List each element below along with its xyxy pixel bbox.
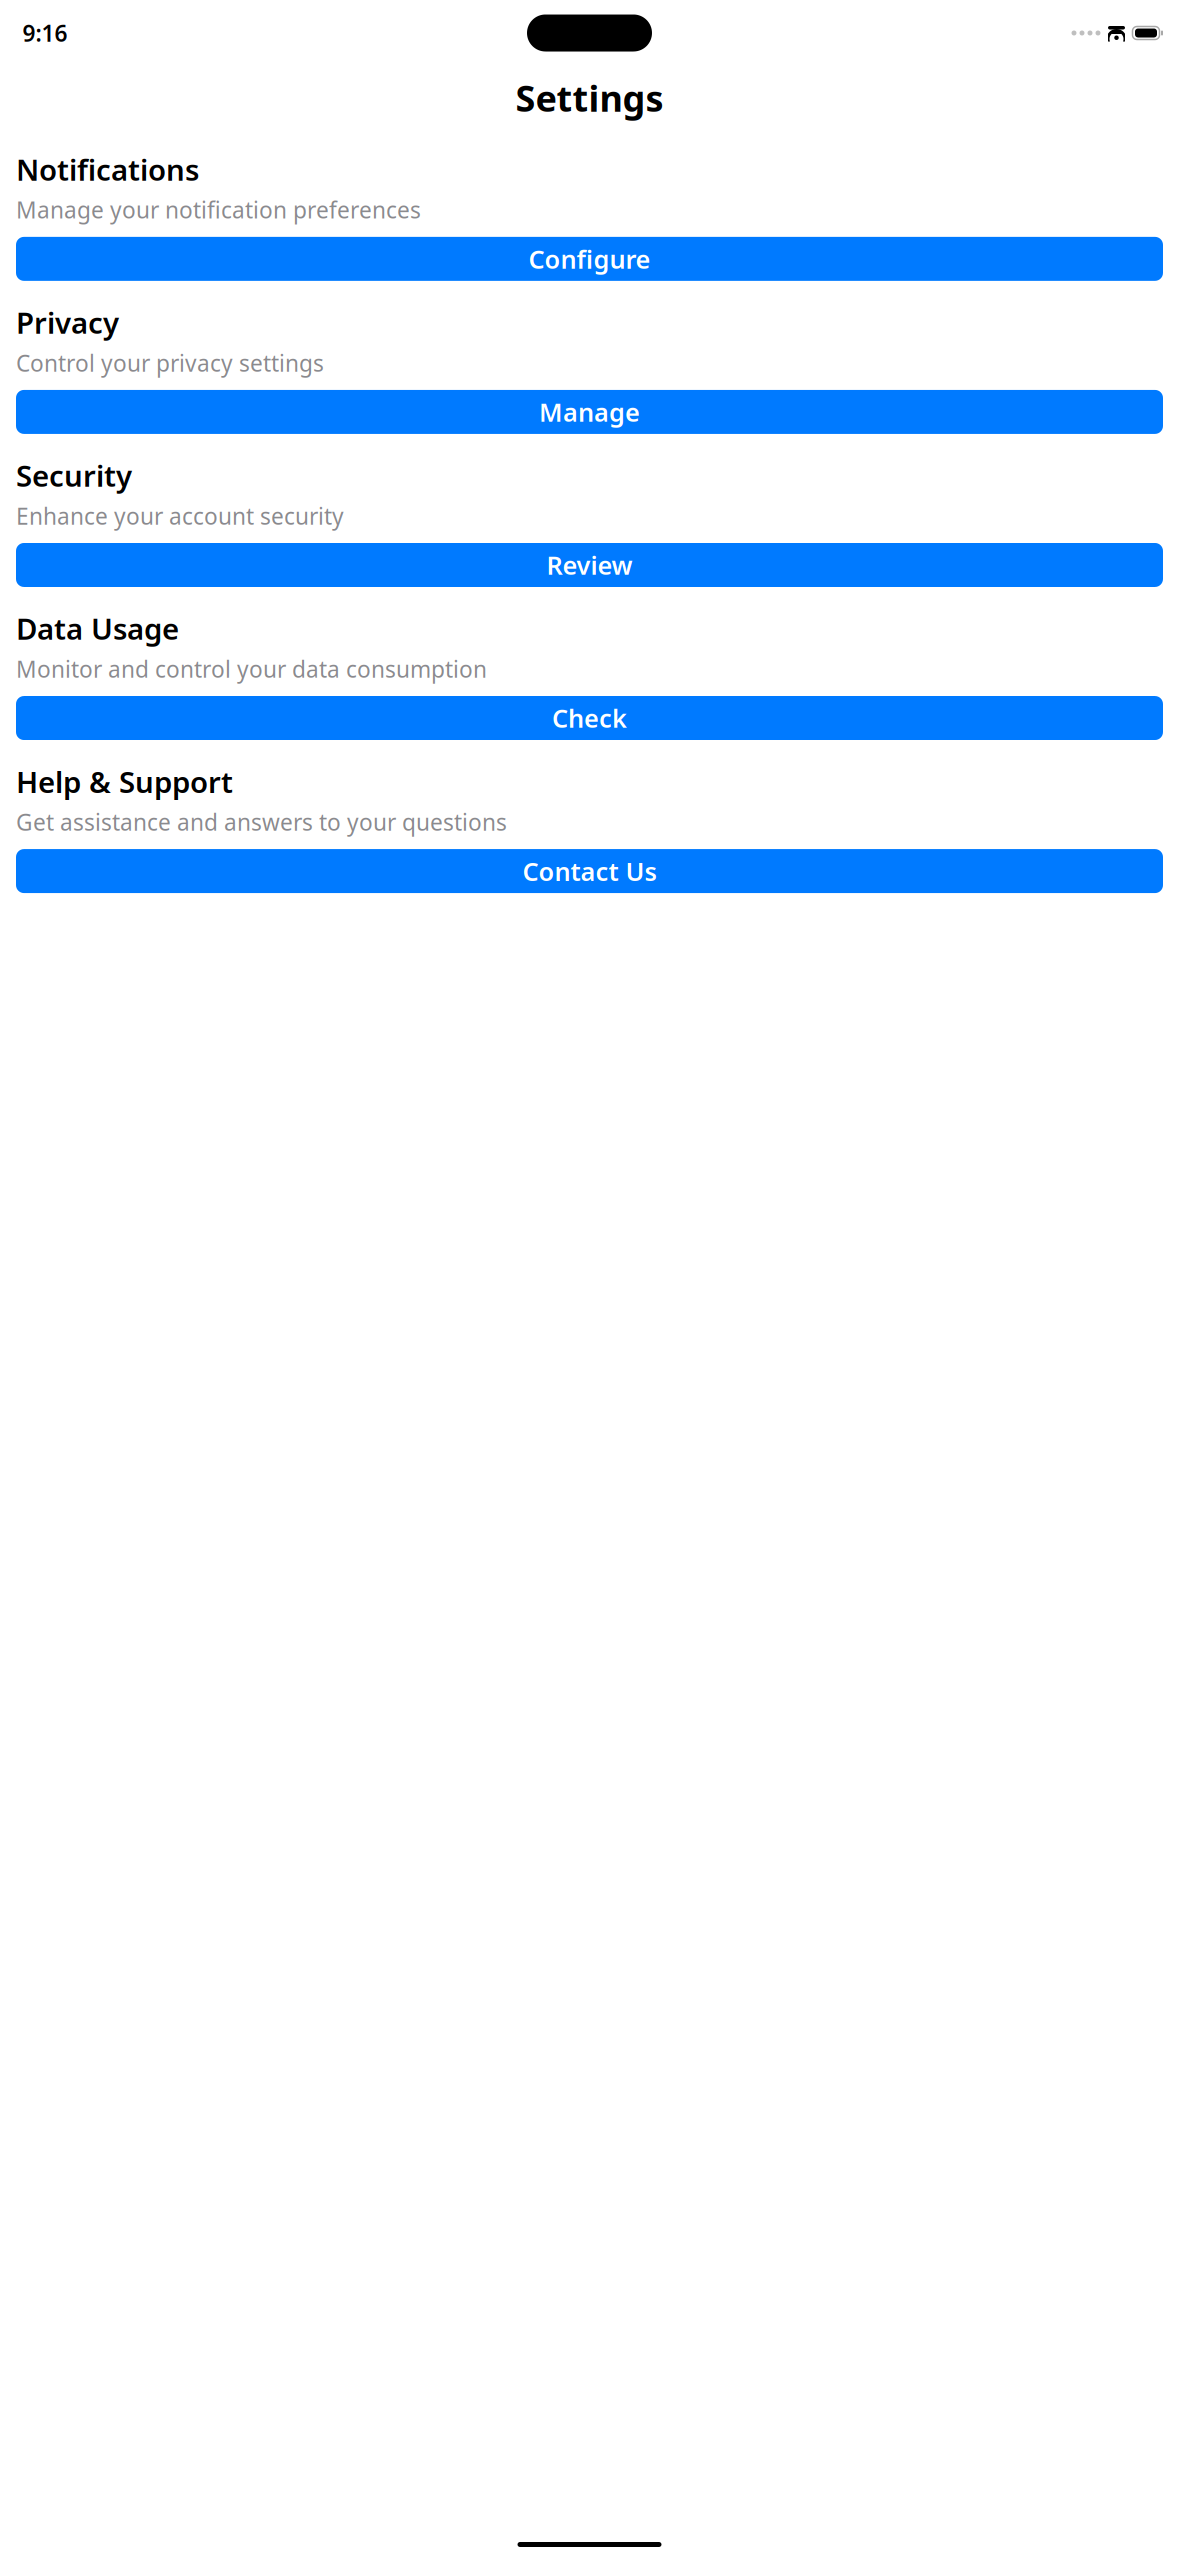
staticText: Get assistance and answers to your quest… bbox=[16, 807, 507, 837]
staticText: Notifications bbox=[16, 150, 199, 189]
staticText: Review bbox=[546, 548, 632, 582]
staticText: Data Usage bbox=[16, 609, 179, 648]
staticText: Monitor and control your data consumptio… bbox=[16, 654, 487, 684]
staticText: Control your privacy settings bbox=[16, 348, 324, 378]
button[interactable]: Check bbox=[16, 696, 1163, 740]
staticText: Security bbox=[16, 456, 132, 495]
staticText: 9:16 bbox=[22, 18, 67, 48]
staticText: Contact Us bbox=[522, 854, 656, 888]
staticText: Help & Support bbox=[16, 762, 233, 801]
staticText: Manage bbox=[539, 395, 640, 429]
staticText: Settings bbox=[515, 74, 663, 122]
button[interactable]: Manage bbox=[16, 390, 1163, 434]
staticText: Manage your notification preferences bbox=[16, 195, 421, 225]
button[interactable]: Contact Us bbox=[16, 849, 1163, 893]
staticText: Configure bbox=[528, 242, 650, 276]
staticText: Privacy bbox=[16, 303, 119, 342]
staticText: Enhance your account security bbox=[16, 501, 344, 531]
button[interactable]: Review bbox=[16, 543, 1163, 587]
staticText: Check bbox=[552, 701, 627, 735]
button[interactable]: Configure bbox=[16, 237, 1163, 281]
